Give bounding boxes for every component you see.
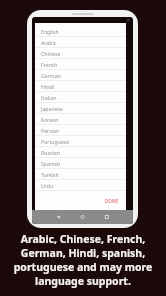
staticText: Hindi xyxy=(41,83,54,90)
button[interactable]: Japanese xyxy=(35,103,126,114)
staticText: Russian xyxy=(41,149,60,156)
staticText: Portuguese xyxy=(41,138,70,145)
staticText: Japanese xyxy=(41,105,63,112)
button[interactable]: Spanish xyxy=(35,158,126,169)
button[interactable]: Italian xyxy=(35,92,126,103)
staticText: Korean xyxy=(41,116,59,123)
staticText: DONE xyxy=(105,198,119,204)
button[interactable]: French xyxy=(35,59,126,70)
staticText: Chinese xyxy=(41,50,61,57)
staticText: Italian xyxy=(41,94,57,101)
staticText: Spanish xyxy=(41,160,61,167)
button[interactable]: Chinese xyxy=(35,48,126,59)
staticText: Persian xyxy=(41,127,60,134)
button[interactable]: Korean xyxy=(35,114,126,125)
button[interactable]: Portuguese xyxy=(35,136,126,147)
staticText: Arabic, Chinese, French, German, Hindi, … xyxy=(0,232,166,288)
staticText: German xyxy=(41,72,61,79)
button[interactable]: Turkish xyxy=(35,169,126,180)
staticText: Arabic xyxy=(41,39,57,46)
button[interactable]: Russian xyxy=(35,147,126,158)
button[interactable]: German xyxy=(35,70,126,81)
button[interactable]: Hindi xyxy=(35,81,126,92)
staticText: French xyxy=(41,61,58,68)
button[interactable]: DONE xyxy=(103,197,121,205)
button[interactable]: Persian xyxy=(35,125,126,136)
staticText: Turkish xyxy=(41,171,59,178)
button[interactable]: Urdu xyxy=(35,180,126,191)
staticText: English xyxy=(41,28,59,35)
button[interactable]: Arabic xyxy=(35,37,126,48)
button[interactable]: English xyxy=(35,26,126,37)
staticText: Urdu xyxy=(41,182,54,189)
